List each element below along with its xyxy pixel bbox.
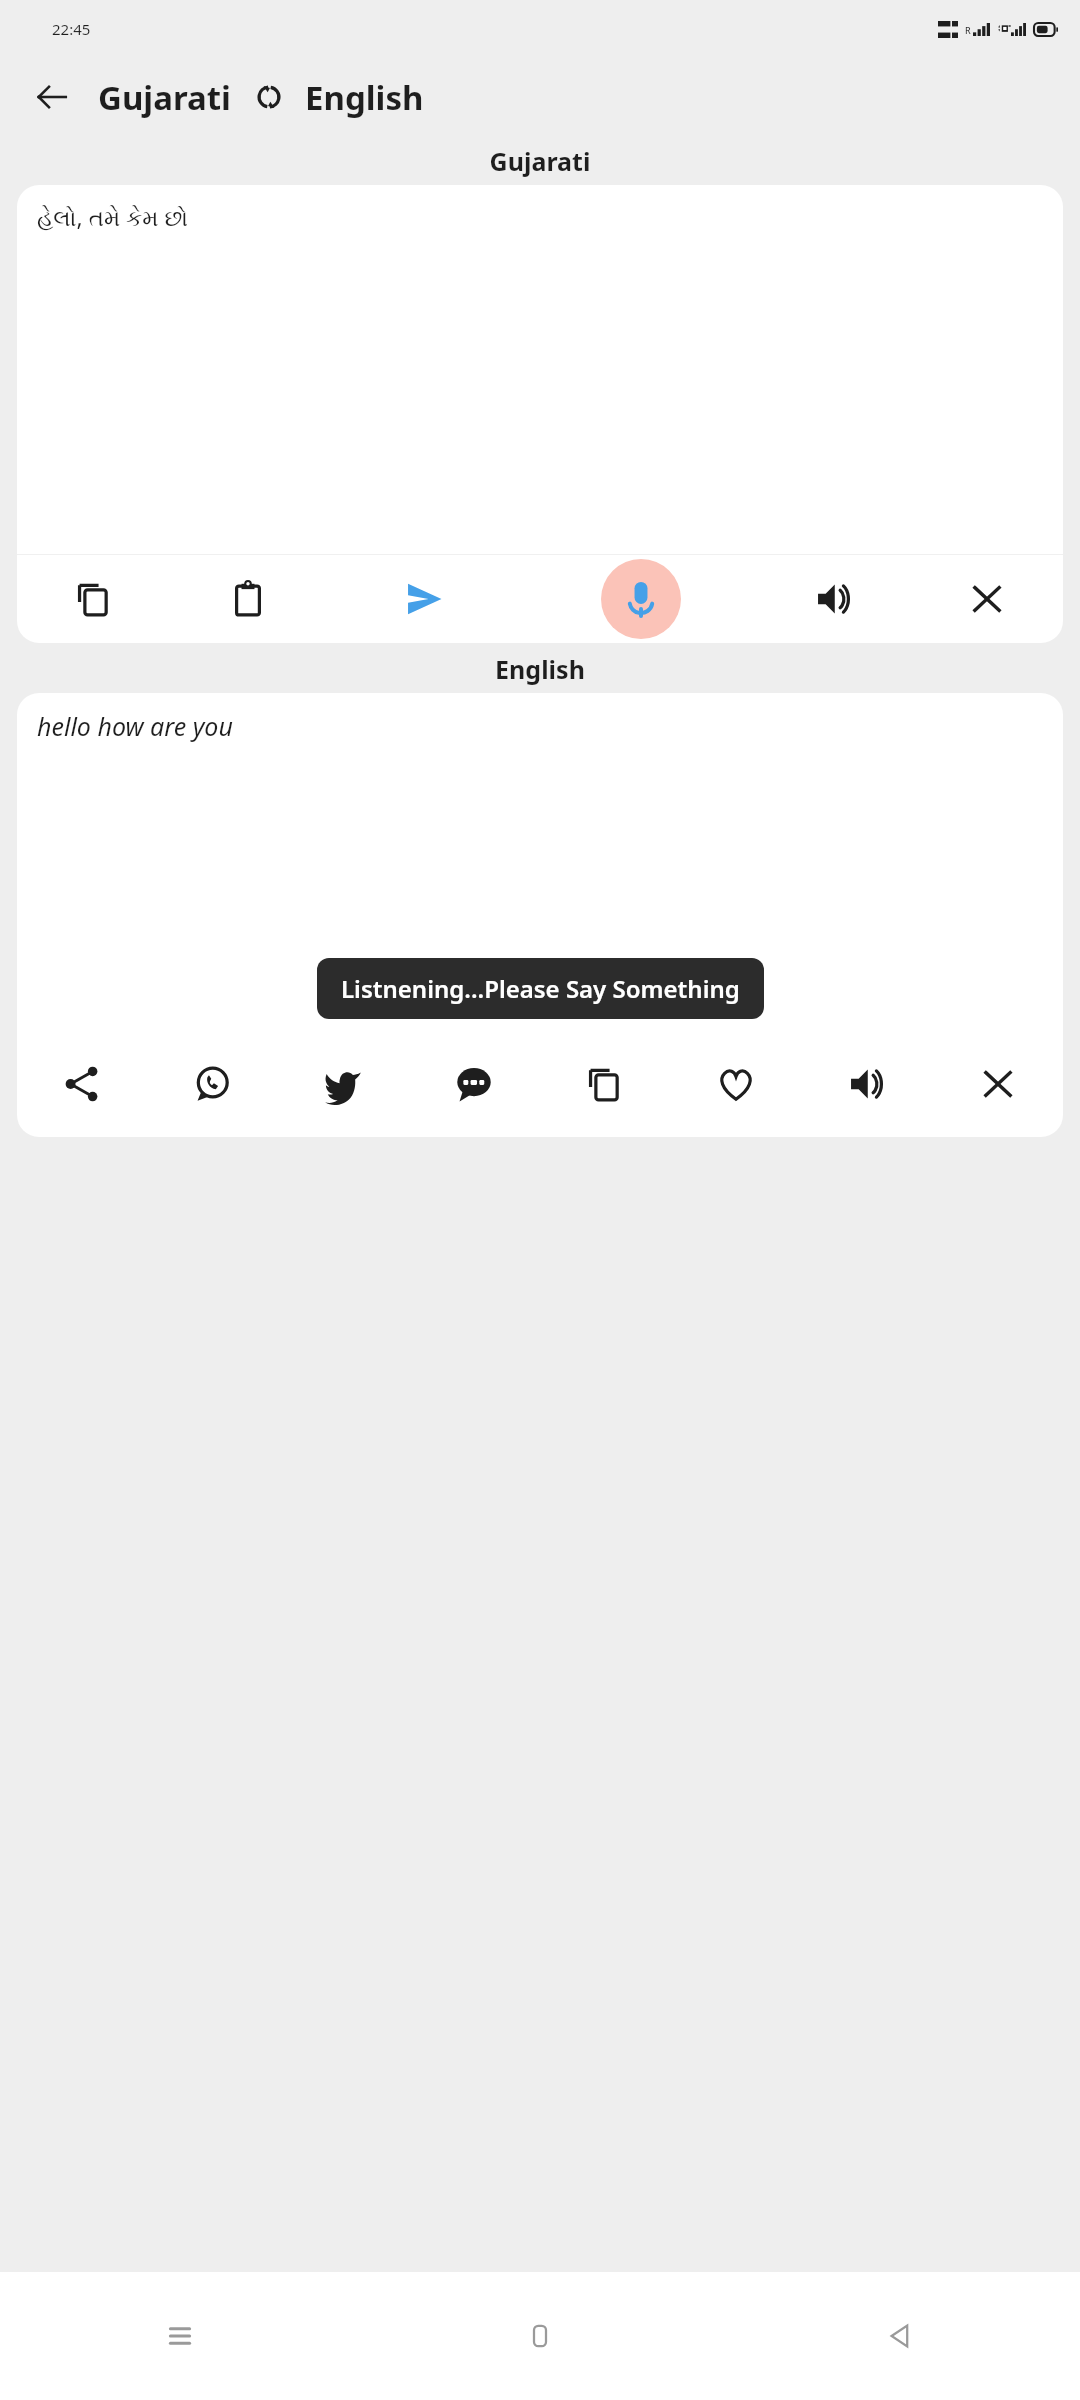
button[interactable]: WhatsApp bbox=[147, 1043, 277, 1125]
button[interactable]: SMS bbox=[408, 1043, 539, 1125]
button[interactable]: Clear bbox=[932, 1043, 1063, 1125]
button[interactable]: Speak bbox=[801, 1043, 932, 1125]
button[interactable]: Speak bbox=[757, 555, 910, 643]
button[interactable]: Recents bbox=[0, 2272, 360, 2400]
button[interactable]: Home bbox=[360, 2272, 720, 2400]
button[interactable]: Twitter bbox=[277, 1043, 408, 1125]
button[interactable]: Microphone bbox=[524, 555, 757, 643]
button[interactable]: Swap languages bbox=[247, 75, 291, 119]
button[interactable]: Paste bbox=[171, 555, 324, 643]
staticText: Listnening...Please Say Something bbox=[341, 972, 740, 1005]
staticText: R bbox=[965, 24, 971, 36]
staticText: Gujarati bbox=[0, 144, 1080, 178]
button[interactable]: Favourite bbox=[670, 1043, 801, 1125]
staticText: 22:45 bbox=[52, 19, 91, 39]
button[interactable]: English bbox=[305, 75, 424, 120]
staticText: English bbox=[0, 652, 1080, 686]
button[interactable]: Share bbox=[17, 1043, 147, 1125]
button[interactable]: Gujarati bbox=[98, 75, 231, 120]
button[interactable]: Back bbox=[720, 2272, 1080, 2400]
button[interactable]: Back bbox=[24, 69, 80, 125]
button[interactable]: Send bbox=[324, 555, 524, 643]
button[interactable]: Copy bbox=[17, 555, 171, 643]
button[interactable]: Copy bbox=[539, 1043, 670, 1125]
staticText: હેલો, તમે કેમ છો bbox=[37, 201, 189, 232]
staticText: hello how are you bbox=[37, 709, 233, 743]
button[interactable]: Clear bbox=[910, 555, 1063, 643]
